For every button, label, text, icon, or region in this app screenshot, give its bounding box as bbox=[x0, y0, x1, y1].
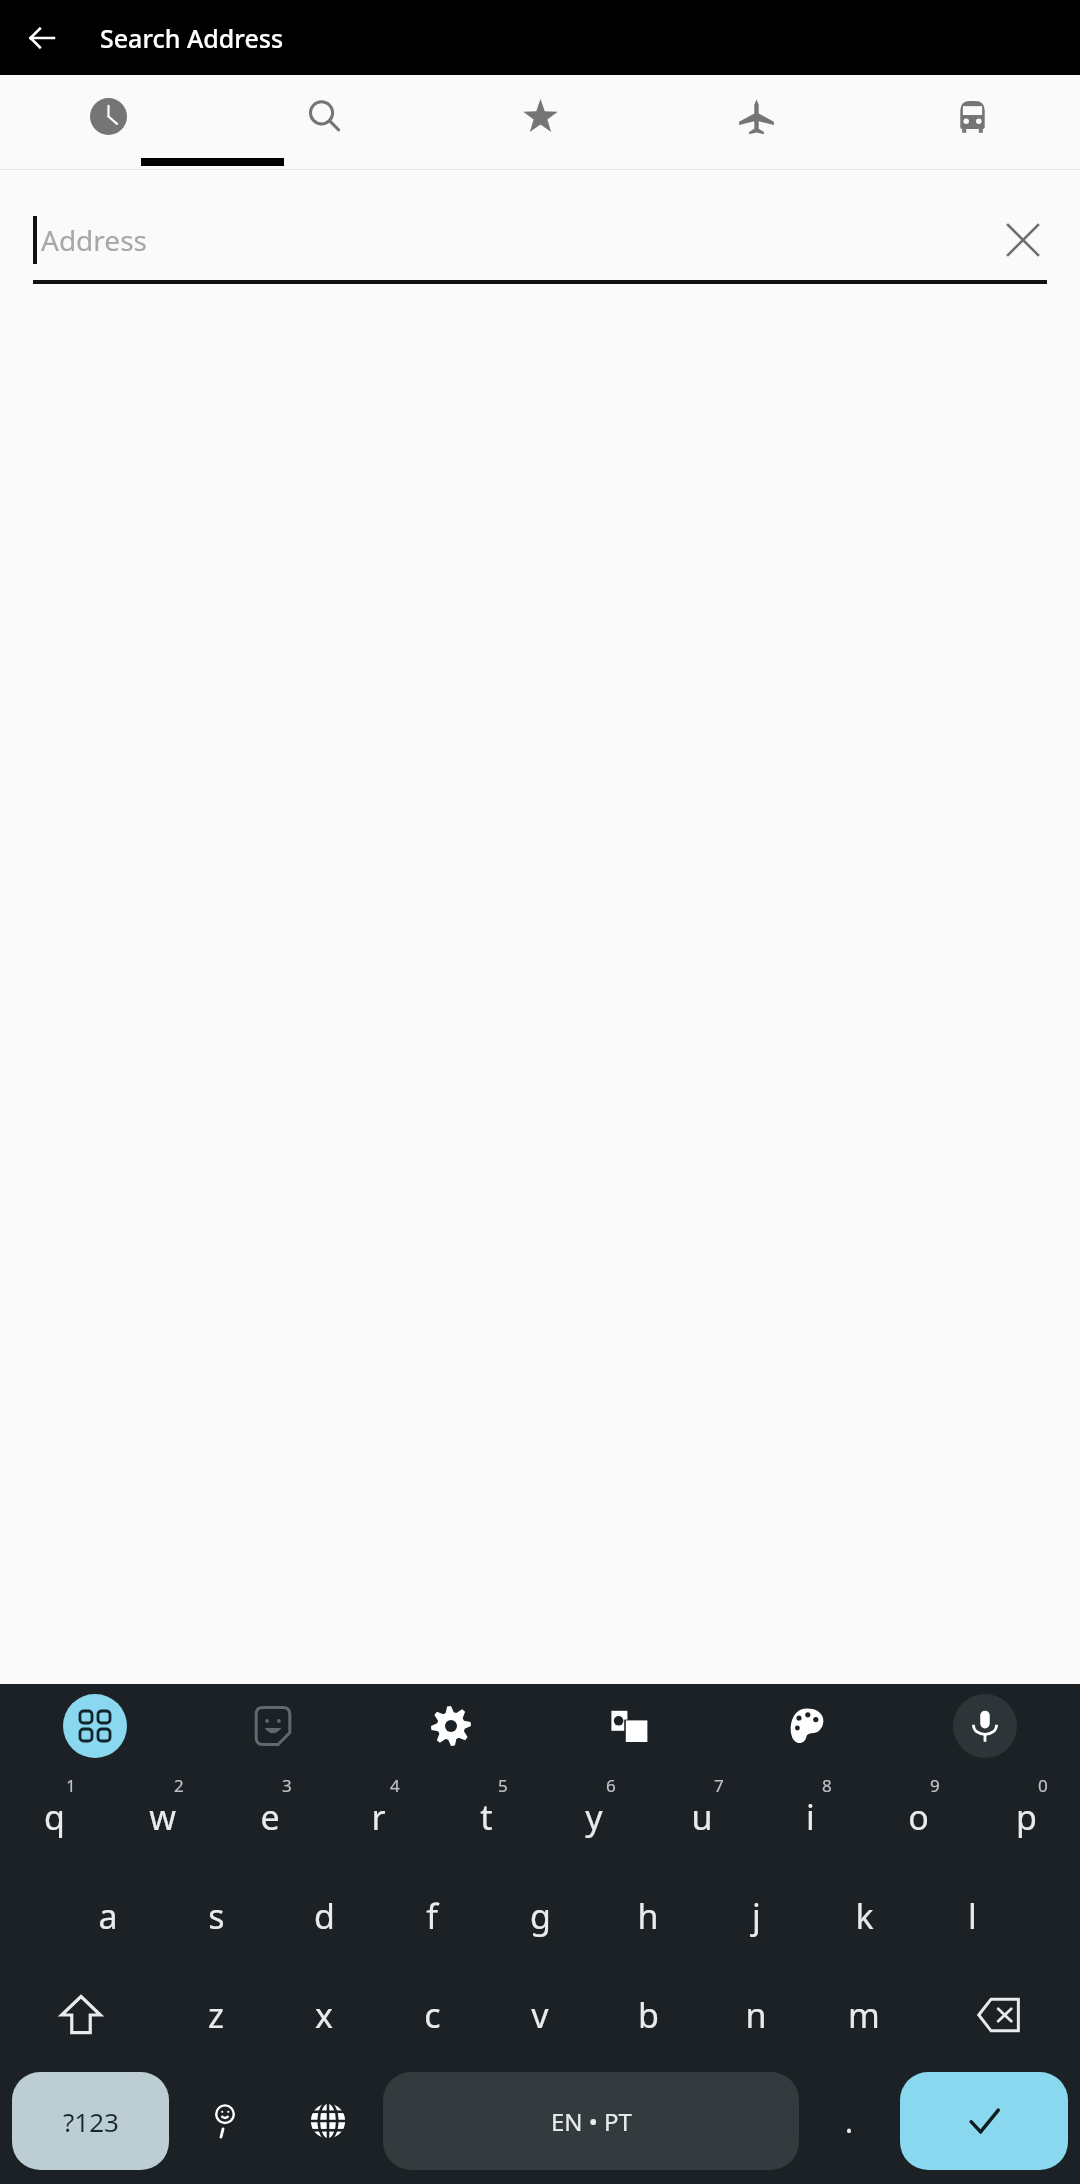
staticText: q bbox=[44, 1794, 65, 1840]
button[interactable]: n bbox=[702, 1965, 810, 2064]
button[interactable]: s bbox=[162, 1866, 270, 1965]
staticText: 3 bbox=[282, 1774, 292, 1797]
button[interactable]: d bbox=[270, 1866, 378, 1965]
button[interactable]: k bbox=[810, 1866, 918, 1965]
button[interactable]: l bbox=[918, 1866, 1026, 1965]
staticText: b bbox=[638, 1992, 659, 2038]
button[interactable]: Enter bbox=[900, 2072, 1068, 2170]
button[interactable]: b bbox=[594, 1965, 702, 2064]
button[interactable]: Flights bbox=[648, 75, 864, 170]
staticText: 8 bbox=[822, 1774, 832, 1797]
button[interactable]: a bbox=[54, 1866, 162, 1965]
button[interactable]: o bbox=[864, 1768, 972, 1866]
staticText: n bbox=[745, 1992, 767, 2038]
button[interactable]: i bbox=[756, 1768, 864, 1866]
staticText: c bbox=[424, 1992, 441, 2038]
staticText: 9 bbox=[930, 1774, 940, 1797]
button[interactable]: Clear bbox=[999, 216, 1047, 264]
button[interactable]: x bbox=[270, 1965, 378, 2064]
staticText: u bbox=[691, 1794, 713, 1840]
staticText: e bbox=[260, 1794, 280, 1840]
staticText: y bbox=[585, 1794, 603, 1840]
button[interactable]: Change language bbox=[276, 2072, 379, 2170]
staticText: a bbox=[98, 1893, 118, 1939]
button[interactable]: Backspace bbox=[918, 1965, 1080, 2064]
button[interactable]: t bbox=[432, 1768, 540, 1866]
button[interactable]: e bbox=[216, 1768, 324, 1866]
button[interactable]: ?123 bbox=[12, 2072, 169, 2170]
staticText: k bbox=[855, 1893, 874, 1939]
staticText: m bbox=[848, 1992, 880, 2038]
staticText: w bbox=[149, 1794, 176, 1840]
button[interactable]: Translate bbox=[540, 1684, 718, 1768]
button[interactable]: EN • PT bbox=[383, 2072, 799, 2170]
button[interactable]: z bbox=[162, 1965, 270, 2064]
staticText: . bbox=[845, 2101, 854, 2142]
staticText: d bbox=[314, 1893, 335, 1939]
staticText: Address bbox=[41, 221, 999, 259]
button[interactable]: Favorites bbox=[432, 75, 648, 170]
button[interactable]: r bbox=[324, 1768, 432, 1866]
staticText: r bbox=[371, 1794, 386, 1840]
button[interactable]: Stickers bbox=[184, 1684, 362, 1768]
staticText: 1 bbox=[66, 1774, 76, 1797]
button[interactable]: Back bbox=[18, 14, 66, 62]
staticText: p bbox=[1016, 1794, 1037, 1840]
button[interactable]: j bbox=[702, 1866, 810, 1965]
staticText: g bbox=[530, 1893, 551, 1939]
button[interactable]: u bbox=[648, 1768, 756, 1866]
staticText: o bbox=[908, 1794, 929, 1840]
staticText: f bbox=[426, 1893, 438, 1939]
button[interactable]: g bbox=[486, 1866, 594, 1965]
button[interactable]: w bbox=[108, 1768, 216, 1866]
button[interactable]: p bbox=[972, 1768, 1080, 1866]
button[interactable]: Search bbox=[216, 75, 432, 170]
button[interactable]: Transit bbox=[864, 75, 1080, 170]
staticText: x bbox=[315, 1992, 333, 2038]
button[interactable]: Emoji bbox=[173, 2072, 276, 2170]
button[interactable]: . bbox=[803, 2072, 896, 2170]
staticText: ?123 bbox=[63, 2104, 119, 2139]
staticText: v bbox=[531, 1992, 549, 2038]
staticText: s bbox=[208, 1893, 225, 1939]
staticText: 2 bbox=[174, 1774, 184, 1797]
staticText: z bbox=[208, 1992, 224, 2038]
staticText: 6 bbox=[606, 1774, 616, 1797]
button[interactable]: v bbox=[486, 1965, 594, 2064]
button[interactable]: f bbox=[378, 1866, 486, 1965]
staticText: j bbox=[752, 1893, 761, 1939]
button[interactable]: c bbox=[378, 1965, 486, 2064]
staticText: EN • PT bbox=[551, 2105, 632, 2138]
button[interactable]: Symbols bbox=[6, 1684, 184, 1768]
staticText: 5 bbox=[498, 1774, 508, 1797]
button[interactable]: Settings bbox=[362, 1684, 540, 1768]
staticText: h bbox=[637, 1893, 659, 1939]
staticText: t bbox=[480, 1794, 493, 1840]
staticText: 4 bbox=[390, 1774, 400, 1797]
button[interactable]: h bbox=[594, 1866, 702, 1965]
button[interactable]: y bbox=[540, 1768, 648, 1866]
staticText: 0 bbox=[1038, 1774, 1048, 1797]
staticText: i bbox=[806, 1794, 815, 1840]
staticText: l bbox=[968, 1893, 977, 1939]
button[interactable]: Recent bbox=[0, 75, 216, 170]
button[interactable]: Shift bbox=[0, 1965, 162, 2064]
button[interactable]: Theme bbox=[718, 1684, 896, 1768]
staticText: 7 bbox=[714, 1774, 724, 1797]
button[interactable]: m bbox=[810, 1965, 918, 2064]
staticText: Search Address bbox=[100, 21, 284, 55]
button[interactable]: Voice input bbox=[896, 1684, 1074, 1768]
button[interactable]: q bbox=[0, 1768, 108, 1866]
